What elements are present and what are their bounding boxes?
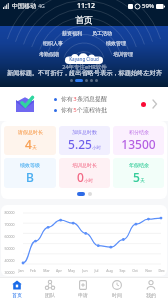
staticText: 新闻标题。不可折行，超出省略号表示，标题始终左对齐 [7, 69, 162, 77]
staticText: Oct [132, 268, 138, 273]
staticText: 3 [73, 95, 77, 103]
button[interactable]: 绩效等级 [4, 158, 56, 188]
staticText: Aug [106, 268, 113, 273]
staticText: 40000 [4, 258, 15, 263]
staticText: 时间 [112, 292, 122, 298]
staticText: 小时 [92, 145, 101, 151]
staticText: 积分结余 [129, 129, 149, 135]
button[interactable]: 首页 [0, 277, 33, 300]
staticText: 员工活动 [92, 30, 112, 36]
staticText: 59% [142, 2, 154, 10]
staticText: 70000 [4, 222, 15, 227]
staticText: Jan [18, 268, 24, 273]
staticText: 年假结余 [129, 162, 149, 168]
staticText: 绩效管理 [106, 40, 126, 46]
staticText: Mar [43, 268, 50, 273]
staticText: 培训管理 [113, 51, 133, 57]
staticText: Dec [158, 268, 165, 273]
button[interactable]: 我的 [134, 277, 168, 300]
staticText: 30000 [4, 270, 15, 275]
staticText: 你有 [61, 106, 73, 114]
staticText: 24年专注eHR软件 [62, 63, 107, 71]
staticText: May [68, 268, 75, 273]
staticText: 5 [73, 106, 77, 114]
staticText: 0 [77, 169, 84, 185]
staticText: 考勤假期 [39, 51, 59, 57]
staticText: 首页 [75, 14, 93, 25]
staticText: B [26, 169, 34, 185]
staticText: 60000 [4, 234, 15, 239]
staticText: 我的 [146, 292, 156, 298]
staticText: 加班总时数 [72, 129, 97, 135]
button[interactable]: 培训总时长 [59, 158, 110, 188]
staticText: Jun [82, 268, 88, 273]
staticText: 个流程待批 [77, 106, 107, 114]
staticText: 薪资福利 [62, 30, 82, 36]
button[interactable]: 积分结余 [113, 126, 164, 155]
staticText: 天 [140, 178, 145, 184]
staticText: 请假总时长 [18, 129, 43, 135]
staticText: 4G [38, 3, 45, 10]
staticText: 小时 [84, 178, 93, 184]
staticText: 5 [133, 169, 140, 185]
button[interactable]: 你有 [0, 87, 168, 121]
button[interactable]: 年假结余 [113, 158, 164, 188]
button[interactable]: 申请 [66, 277, 100, 300]
staticText: 首页 [12, 292, 22, 298]
staticText: Nov [145, 268, 152, 273]
staticText: 50000 [4, 246, 15, 251]
staticText: 80000 [4, 210, 15, 215]
staticText: 中国移动 [12, 2, 36, 10]
button[interactable]: 加班总时数 [59, 126, 110, 155]
staticText: Jul [94, 268, 99, 273]
staticText: 申请 [78, 292, 88, 298]
staticText: 团队 [45, 292, 55, 298]
button[interactable]: 团队 [33, 277, 66, 300]
button[interactable]: 请假总时长 [4, 126, 56, 155]
staticText: 4 [25, 136, 32, 152]
staticText: 天 [32, 145, 37, 151]
button[interactable]: 时间 [100, 277, 134, 300]
staticText: Kayang Cloud [69, 56, 99, 62]
staticText: Sep [119, 268, 126, 273]
staticText: 培训总时长 [72, 162, 97, 168]
staticText: 13500 [121, 136, 156, 152]
staticText: 条消息提醒 [77, 95, 107, 103]
staticText: 绩效等级 [20, 162, 40, 168]
staticText: 你有 [61, 95, 73, 103]
staticText: Apr [56, 268, 62, 273]
staticText: 11:12 [77, 1, 95, 11]
staticText: 组织人事 [43, 40, 63, 46]
staticText: Feb [30, 268, 36, 273]
staticText: 5.25 [68, 136, 92, 152]
